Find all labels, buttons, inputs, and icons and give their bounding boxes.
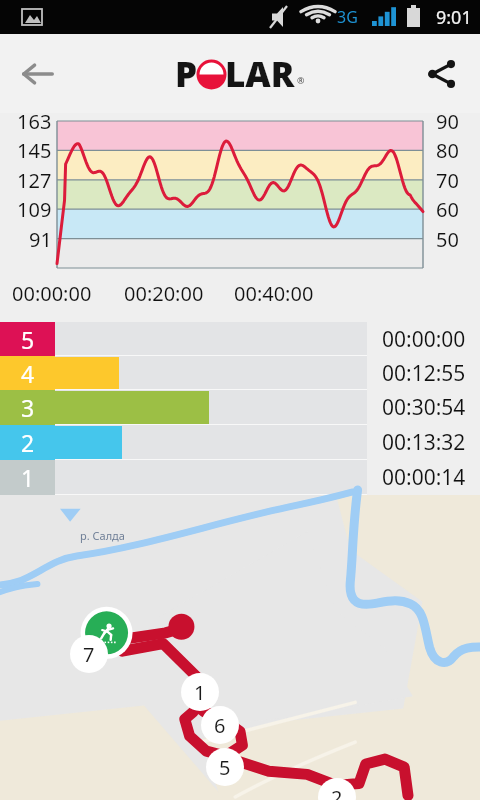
staticText: 2 (331, 784, 343, 800)
button[interactable]: 7 (70, 635, 108, 673)
staticText: 00:12:55 (382, 359, 466, 388)
staticText: 2 (21, 427, 35, 458)
staticText: 4 (21, 358, 35, 389)
button[interactable]: Share (414, 46, 470, 102)
staticText: 9:01 (436, 5, 472, 30)
staticText: 3 (21, 392, 35, 423)
staticText: 00:00:14 (382, 463, 466, 492)
staticText: 60 (436, 196, 459, 223)
staticText: 145 (17, 137, 52, 164)
staticText: 109 (17, 196, 52, 223)
button[interactable]: 4 (0, 356, 480, 390)
staticText: P (175, 50, 198, 98)
button[interactable]: 2 (0, 425, 480, 460)
staticText: 00:30:54 (382, 393, 466, 422)
button[interactable]: 5 (0, 322, 480, 356)
staticText: 00:40:00 (234, 280, 314, 307)
button[interactable]: 2 (318, 778, 356, 800)
staticText: LAR (225, 50, 295, 98)
staticText: 3G (337, 6, 358, 28)
staticText: 80 (436, 137, 459, 164)
staticText: 1 (21, 462, 35, 493)
staticText: 00:00:00 (12, 280, 92, 307)
staticText: 5 (21, 324, 35, 355)
staticText: 00:20:00 (124, 280, 204, 307)
staticText: 70 (436, 167, 459, 194)
staticText: 1 (194, 679, 206, 706)
button[interactable]: 1 (0, 460, 480, 495)
staticText: 00:13:32 (382, 428, 466, 457)
button[interactable]: 6 (201, 706, 239, 744)
staticText: 127 (17, 167, 52, 194)
staticText: 5 (219, 754, 231, 781)
staticText: 91 (29, 226, 52, 253)
staticText: 163 (17, 108, 52, 135)
button[interactable]: 3 (0, 390, 480, 425)
staticText: ® (297, 74, 305, 86)
button[interactable]: 1 (181, 673, 219, 711)
staticText: 00:00:00 (382, 325, 466, 354)
staticText: 6 (214, 712, 226, 739)
staticText: р. Салда (80, 528, 125, 543)
staticText: 50 (436, 226, 459, 253)
button[interactable]: 5 (206, 748, 244, 786)
staticText: 90 (436, 108, 459, 135)
button[interactable]: Back (10, 46, 66, 102)
staticText: 7 (83, 641, 95, 668)
